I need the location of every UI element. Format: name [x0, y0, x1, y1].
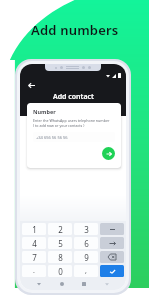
- staticText: 3: [84, 224, 89, 235]
- staticText: 6: [84, 238, 89, 249]
- staticText: Add contact: [53, 92, 94, 102]
- button[interactable]: 9: [74, 251, 98, 263]
- staticText: 4: [32, 238, 37, 249]
- button[interactable]: ,: [74, 265, 98, 277]
- staticText: 7: [32, 252, 37, 263]
- button[interactable]: Back: [33, 279, 45, 288]
- button[interactable]: 5: [48, 237, 72, 249]
- staticText: ,: [85, 266, 87, 276]
- button[interactable]: .: [22, 265, 46, 277]
- button[interactable]: 1: [22, 223, 46, 235]
- staticText: 5: [58, 238, 63, 249]
- staticText: Add numbers: [31, 21, 119, 39]
- staticText: Number: [33, 108, 56, 115]
- button[interactable]: Recents: [78, 279, 90, 288]
- staticText: 2: [58, 224, 63, 235]
- staticText: 9: [84, 252, 89, 263]
- button[interactable]: 4: [22, 237, 46, 249]
- button[interactable]: Add number: [102, 147, 115, 160]
- button[interactable]: Tab: [100, 237, 124, 249]
- button[interactable]: 7: [22, 251, 46, 263]
- button[interactable]: Dash: [100, 223, 124, 235]
- button[interactable]: 3: [74, 223, 98, 235]
- button[interactable]: Back: [25, 79, 37, 91]
- button[interactable]: Enter: [100, 265, 124, 277]
- staticText: +34 656 56 56 56: [36, 135, 68, 140]
- staticText: 0: [58, 266, 63, 277]
- button[interactable]: 2: [48, 223, 72, 235]
- button[interactable]: 8: [48, 251, 72, 263]
- staticText: 1: [32, 224, 37, 235]
- button[interactable]: Backspace: [100, 251, 124, 263]
- button[interactable]: Home: [56, 279, 68, 288]
- staticText: .: [33, 266, 35, 276]
- button[interactable]: 0: [48, 265, 72, 277]
- staticText: 8: [58, 252, 63, 263]
- button[interactable]: +34 656 56 56 56: [33, 132, 115, 142]
- button[interactable]: Hide keyboard: [101, 279, 113, 288]
- button[interactable]: 6: [74, 237, 98, 249]
- staticText: Enter the WhatsApp users telephone numbe…: [33, 118, 115, 128]
